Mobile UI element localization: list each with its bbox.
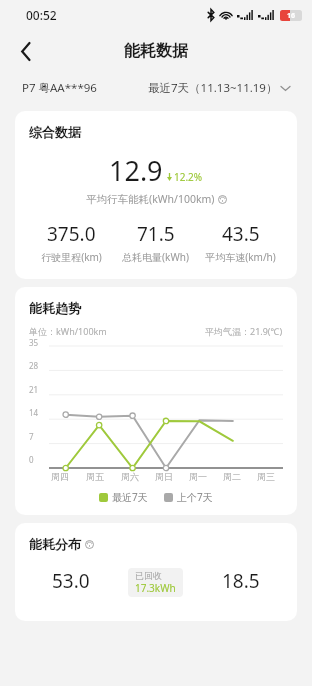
staticText: 能耗分布 — [29, 536, 81, 552]
staticText: 平均气温：21.9(℃) — [205, 325, 283, 337]
button[interactable]: 能耗趋势 — [15, 287, 297, 515]
staticText: 17.3kWh — [135, 581, 176, 595]
staticText: 周二 — [223, 471, 241, 482]
staticText: 周六 — [121, 471, 139, 482]
staticText: 14 — [29, 407, 39, 418]
staticText: 18.5 — [222, 568, 260, 594]
staticText: 35 — [29, 337, 39, 348]
staticText: 12.9 — [109, 152, 163, 189]
staticText: 7 — [29, 431, 34, 442]
staticText: 行驶里程(km) — [41, 250, 102, 264]
staticText: 16 — [287, 11, 296, 21]
button[interactable]: 能耗分布 — [15, 523, 297, 621]
staticText: 平均行车能耗(kWh/100km) — [86, 192, 215, 206]
button[interactable]: 43.5 — [198, 221, 283, 264]
staticText: 43.5 — [222, 221, 260, 247]
staticText: 0 — [29, 454, 34, 465]
staticText: 周四 — [51, 471, 69, 482]
staticText: 最近7天（11.13~11.19） — [148, 80, 278, 96]
staticText: 375.0 — [47, 221, 96, 247]
staticText: 单位：kWh/100km — [29, 325, 107, 337]
staticText: 21 — [29, 384, 39, 395]
staticText: 周五 — [86, 471, 104, 482]
staticText: 周一 — [189, 471, 207, 482]
staticText: 53.0 — [52, 568, 90, 594]
staticText: 平均车速(km/h) — [205, 250, 276, 264]
staticText: 28 — [29, 360, 39, 371]
staticText: 总耗电量(kWh) — [122, 250, 189, 264]
staticText: 周三 — [257, 471, 275, 482]
button[interactable]: 综合数据 — [15, 111, 297, 279]
staticText: 能耗数据 — [124, 41, 188, 61]
button[interactable]: 375.0 — [29, 221, 113, 264]
button[interactable]: 上个7天 — [164, 490, 213, 504]
staticText: 上个7天 — [177, 490, 213, 504]
staticText: 71.5 — [137, 221, 175, 247]
button[interactable]: P7 粤AA***96 — [22, 80, 97, 96]
staticText: 最近7天 — [112, 490, 148, 504]
button[interactable]: 最近7天 — [99, 490, 148, 504]
staticText: 00:52 — [26, 7, 57, 23]
button[interactable]: 最近7天（11.13~11.19） — [148, 80, 290, 96]
staticText: 已回收 — [135, 570, 162, 581]
staticText: 能耗趋势 — [29, 300, 81, 316]
button[interactable]: Back — [8, 33, 44, 69]
staticText: 12.2% — [174, 170, 203, 184]
staticText: 综合数据 — [29, 124, 81, 140]
button[interactable]: 71.5 — [113, 221, 198, 264]
staticText: 周日 — [155, 471, 173, 482]
